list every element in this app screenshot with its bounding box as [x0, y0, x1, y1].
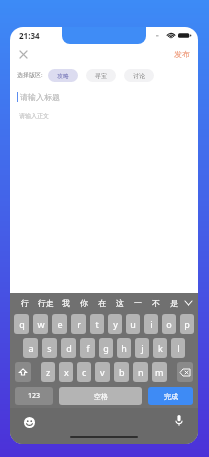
staticText: 攻略	[57, 72, 69, 80]
staticText: 这	[116, 298, 124, 308]
staticText: f	[86, 342, 90, 354]
button[interactable]: i	[144, 314, 158, 334]
button[interactable]: t	[90, 314, 104, 334]
staticText: k	[158, 342, 163, 354]
button[interactable]: k	[153, 338, 167, 358]
button[interactable]: 空格	[59, 387, 142, 405]
button[interactable]: 123	[15, 387, 53, 405]
button[interactable]: 寻宝	[86, 69, 116, 82]
button[interactable]: j	[135, 338, 149, 358]
button[interactable]: 讨论	[124, 69, 154, 82]
staticText: h	[121, 342, 127, 354]
button[interactable]: 行	[15, 293, 34, 312]
button[interactable]: 你	[75, 293, 93, 312]
staticText: n	[138, 366, 144, 378]
button[interactable]: a	[23, 338, 38, 358]
staticText: 123	[28, 391, 41, 401]
staticText: 你	[80, 298, 88, 308]
staticText: z	[46, 366, 51, 378]
button[interactable]: 完成	[148, 387, 193, 405]
staticText: l	[177, 342, 180, 354]
staticText: x	[64, 366, 69, 378]
button[interactable]: l	[171, 338, 185, 358]
button[interactable]: q	[14, 314, 29, 334]
button[interactable]: c	[77, 362, 91, 382]
staticText: 是	[170, 298, 178, 308]
staticText: 在	[98, 298, 106, 308]
staticText: 寻宝	[95, 72, 107, 80]
staticText: 行	[21, 298, 29, 308]
staticText: m	[155, 366, 164, 378]
button[interactable]: b	[114, 362, 129, 382]
staticText: d	[66, 342, 72, 354]
button[interactable]: d	[61, 338, 76, 358]
button[interactable]: h	[117, 338, 131, 358]
button[interactable]: n	[133, 362, 148, 382]
staticText: 发布	[174, 49, 190, 59]
staticText: w	[37, 318, 45, 330]
button[interactable]: z	[41, 362, 55, 382]
staticText: e	[57, 318, 63, 330]
staticText: r	[77, 318, 81, 330]
staticText: y	[113, 318, 118, 330]
button[interactable]: 不	[147, 293, 165, 312]
button[interactable]: g	[99, 338, 113, 358]
button[interactable]: More candidates	[183, 293, 193, 312]
button[interactable]: v	[95, 362, 110, 382]
staticText: a	[28, 342, 34, 354]
button[interactable]: x	[59, 362, 73, 382]
staticText: 请输入正文	[19, 112, 49, 120]
staticText: j	[141, 342, 144, 354]
staticText: 讨论	[133, 72, 145, 80]
staticText: u	[130, 318, 136, 330]
staticText: o	[166, 318, 172, 330]
button[interactable]: 在	[93, 293, 111, 312]
button[interactable]: y	[108, 314, 122, 334]
button[interactable]: Backspace	[177, 362, 193, 382]
button[interactable]: 我	[57, 293, 75, 312]
button[interactable]: 是	[165, 293, 183, 312]
button[interactable]: 这	[111, 293, 129, 312]
button[interactable]: p	[180, 314, 194, 334]
button[interactable]: 发布	[171, 47, 193, 61]
staticText: 行走	[38, 298, 54, 308]
staticText: t	[95, 318, 99, 330]
button[interactable]: Close	[14, 45, 32, 63]
button[interactable]: f	[80, 338, 95, 358]
button[interactable]: Shift	[15, 362, 31, 382]
button[interactable]: 一	[129, 293, 147, 312]
button[interactable]: w	[33, 314, 48, 334]
staticText: 请输入标题	[20, 92, 60, 102]
staticText: c	[82, 366, 87, 378]
staticText: 不	[152, 298, 160, 308]
button[interactable]: Emoji	[22, 415, 36, 429]
button[interactable]: o	[162, 314, 176, 334]
button[interactable]: r	[71, 314, 86, 334]
staticText: 一	[134, 298, 142, 308]
button[interactable]: Voice input	[172, 414, 186, 428]
button[interactable]: u	[126, 314, 140, 334]
staticText: i	[150, 318, 153, 330]
staticText: 21:34	[19, 30, 40, 41]
staticText: g	[103, 342, 109, 354]
button[interactable]: m	[152, 362, 167, 382]
button[interactable]: e	[52, 314, 67, 334]
button[interactable]: 行走	[34, 293, 57, 312]
staticText: 空格	[94, 392, 108, 401]
staticText: s	[47, 342, 52, 354]
staticText: q	[19, 318, 25, 330]
staticText: 选择版区:	[17, 71, 43, 79]
staticText: p	[184, 318, 190, 330]
button[interactable]: 攻略	[48, 69, 78, 82]
staticText: v	[100, 366, 105, 378]
staticText: b	[119, 366, 125, 378]
staticText: 完成	[164, 392, 178, 401]
button[interactable]: s	[42, 338, 57, 358]
staticText: 我	[62, 298, 70, 308]
